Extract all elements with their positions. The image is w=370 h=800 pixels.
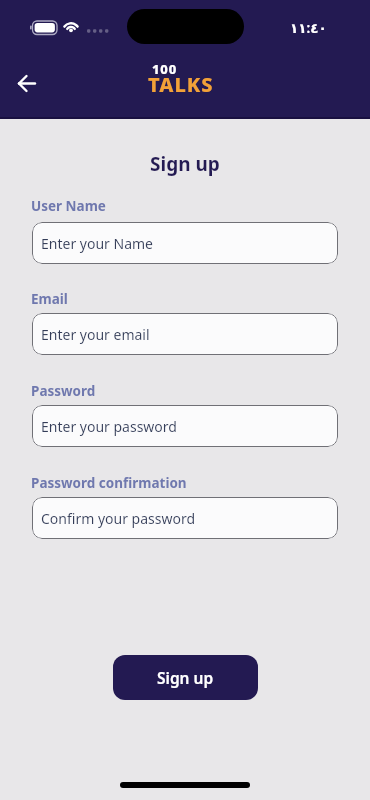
button[interactable]: Enter your Name — [32, 222, 338, 264]
staticText: Enter your Name — [41, 234, 153, 253]
staticText: Email — [31, 290, 68, 308]
staticText: Password confirmation — [31, 474, 187, 492]
staticText: Password — [31, 382, 96, 400]
staticText: User Name — [31, 197, 106, 215]
staticText: Sign up — [157, 667, 214, 688]
staticText: Confirm your password — [41, 509, 196, 528]
button[interactable]: Confirm your password — [32, 497, 338, 539]
staticText: TALKS — [148, 71, 214, 98]
button[interactable]: Sign up — [113, 655, 258, 700]
button[interactable]: Enter your email — [32, 313, 338, 355]
staticText: 100 — [152, 60, 177, 78]
button[interactable]: Enter your password — [32, 405, 338, 447]
staticText: Enter your email — [41, 325, 150, 344]
staticText: ١١:٤٠ — [290, 19, 327, 37]
staticText: Enter your password — [41, 417, 177, 436]
staticText: Sign up — [150, 151, 220, 177]
button[interactable] — [8, 68, 46, 98]
